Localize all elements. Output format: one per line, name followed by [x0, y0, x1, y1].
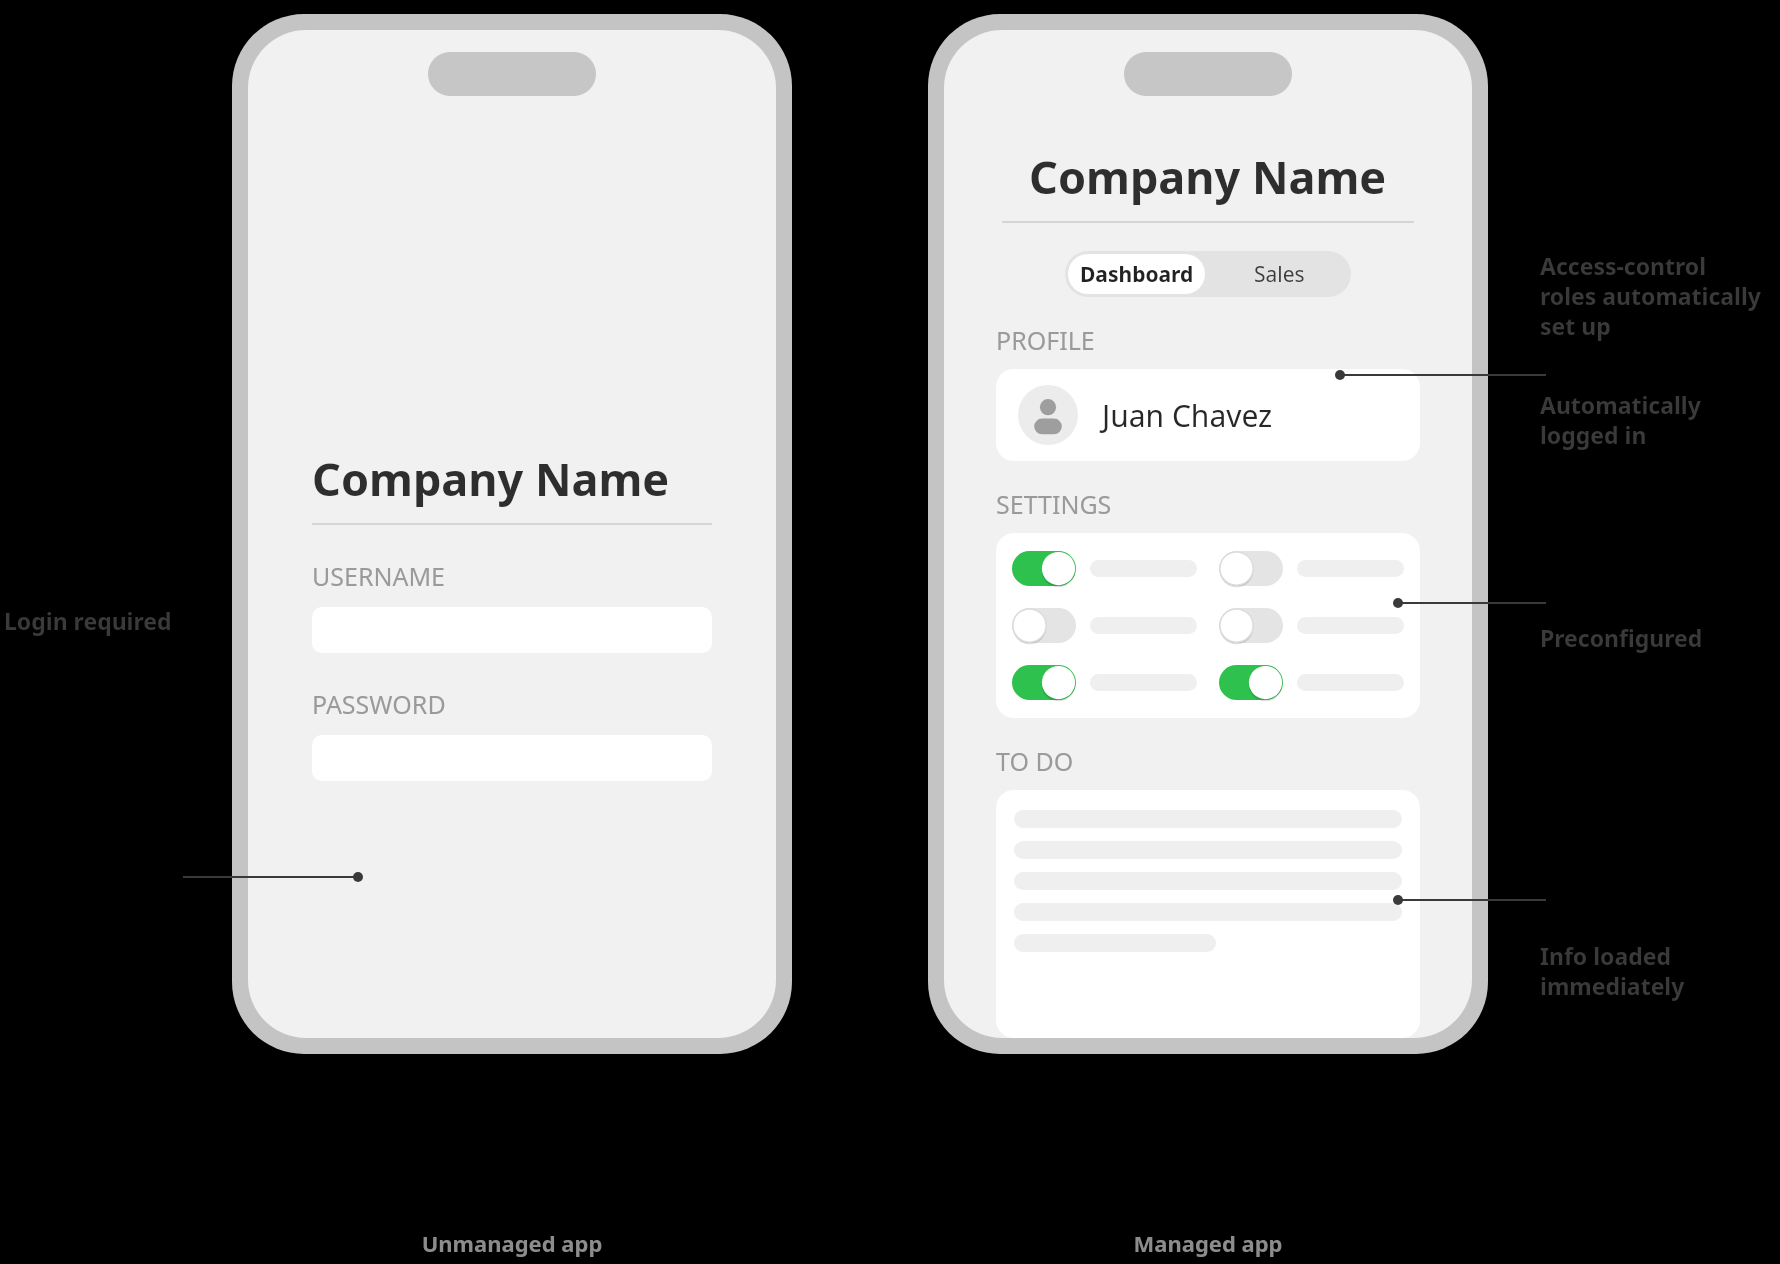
staticText: Info loaded immediately: [1540, 940, 1780, 1001]
staticText: Company Name: [312, 448, 670, 509]
button[interactable]: [996, 790, 1420, 1038]
button[interactable]: Sales: [1208, 251, 1351, 297]
staticText: Company Name: [1029, 146, 1387, 207]
staticText: PROFILE: [996, 323, 1095, 357]
staticText: Sales: [1254, 260, 1305, 289]
button[interactable]: Setting on: [1012, 665, 1076, 700]
staticText: Automatically logged in: [1540, 389, 1780, 450]
button[interactable]: Setting off: [1219, 608, 1283, 643]
staticText: Access-control roles automatically set u…: [1540, 250, 1780, 341]
button[interactable]: Setting on: [1219, 665, 1283, 700]
staticText: USERNAME: [312, 559, 446, 593]
button[interactable]: Dashboard: [1068, 254, 1205, 294]
staticText: Managed app: [928, 1228, 1488, 1258]
button[interactable]: Setting off: [1219, 551, 1283, 586]
button[interactable]: Setting on: [1012, 551, 1076, 586]
button[interactable]: Setting off: [1012, 608, 1076, 643]
staticText: TO DO: [996, 744, 1074, 778]
staticText: PASSWORD: [312, 687, 446, 721]
staticText: Login required: [4, 605, 184, 636]
staticText: Dashboard: [1080, 260, 1194, 289]
staticText: SETTINGS: [996, 487, 1112, 521]
staticText: Preconfigured: [1540, 622, 1780, 653]
staticText: Juan Chavez: [1102, 395, 1273, 436]
staticText: Unmanaged app: [232, 1228, 792, 1258]
button[interactable]: Juan Chavez: [996, 369, 1420, 461]
